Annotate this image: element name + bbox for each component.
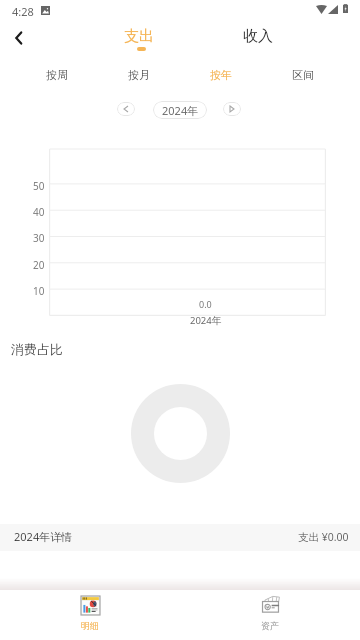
button[interactable]: 按月	[98, 62, 180, 88]
staticText: 10	[33, 284, 45, 296]
staticText: 2024年详情	[14, 529, 73, 544]
staticText: 明细	[81, 620, 99, 631]
staticText: 40	[33, 205, 45, 217]
staticText: 0.0	[199, 298, 212, 310]
button[interactable]: 按周	[16, 62, 98, 88]
button[interactable]: 明细	[0, 590, 180, 640]
staticText: 按年	[210, 68, 232, 82]
button[interactable]: Next year	[223, 102, 241, 116]
button[interactable]: 区间	[262, 62, 344, 88]
button[interactable]: 按年	[180, 62, 262, 88]
staticText: 按周	[46, 68, 68, 82]
button[interactable]: 2024年	[153, 101, 207, 119]
staticText: 资产	[261, 620, 279, 631]
button[interactable]: 资产	[180, 590, 360, 640]
staticText: 支出 ¥0.00	[298, 530, 349, 544]
button[interactable]: Previous year	[117, 102, 135, 116]
staticText: 20	[33, 258, 45, 270]
staticText: 2024年	[190, 314, 222, 327]
button[interactable]: 支出	[99, 27, 179, 53]
staticText: 区间	[292, 68, 314, 82]
staticText: 按月	[128, 68, 150, 82]
staticText: 2024年	[162, 103, 199, 118]
staticText: 50	[33, 179, 45, 191]
staticText: 4:28	[12, 4, 34, 19]
staticText: 30	[33, 231, 45, 243]
button[interactable]: 收入	[218, 27, 298, 53]
staticText: 收入	[243, 27, 273, 46]
button[interactable]: Back	[0, 20, 36, 56]
staticText: 消费占比	[11, 341, 63, 357]
staticText: 支出	[124, 27, 154, 46]
